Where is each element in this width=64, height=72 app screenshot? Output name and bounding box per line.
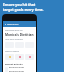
staticText: Monica's Dietitian: [5, 33, 34, 37]
staticText: Breakfast bowl: [9, 70, 24, 72]
staticText: Breakfast bowl: [9, 66, 24, 69]
button[interactable]: Back: [5, 23, 19, 26]
button[interactable]: Breakfast bowl: [5, 66, 37, 70]
button[interactable]: [5, 54, 14, 60]
button[interactable]: Breakfast bowl: [5, 70, 37, 72]
button[interactable]: [15, 54, 24, 60]
staticText: Ensure you hit that: [3, 2, 36, 7]
staticText: Recent activity: [5, 62, 23, 65]
staticText: Your daily progress: [5, 38, 24, 41]
button[interactable]: [25, 54, 34, 60]
staticText: Dashboard: [7, 23, 19, 26]
staticText: WELCOME BACK TO: [5, 29, 23, 32]
staticText: target goals every time.: [3, 7, 44, 12]
staticText: TODAY'S MEALS: [5, 50, 20, 53]
